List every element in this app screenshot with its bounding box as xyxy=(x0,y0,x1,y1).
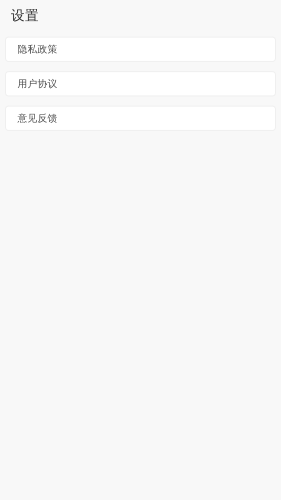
staticText: 意见反馈 xyxy=(17,112,57,124)
staticText: 设置 xyxy=(11,7,39,24)
button[interactable]: 用户协议 xyxy=(5,72,275,96)
staticText: 用户协议 xyxy=(17,78,57,90)
staticText: 隐私政策 xyxy=(17,43,57,55)
button[interactable]: 隐私政策 xyxy=(5,37,275,61)
button[interactable]: 意见反馈 xyxy=(5,106,275,130)
